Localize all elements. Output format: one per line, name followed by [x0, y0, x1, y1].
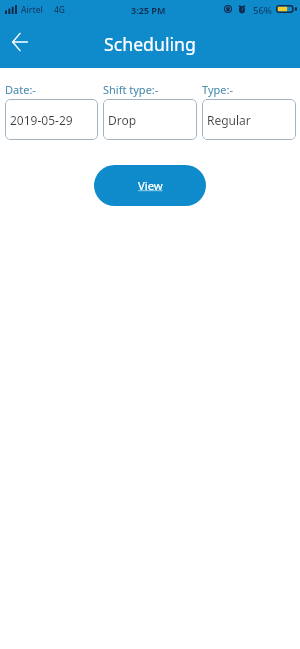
- button[interactable]: Back: [0, 20, 41, 62]
- staticText: Airtel: [21, 4, 43, 16]
- staticText: Date:-: [5, 82, 36, 97]
- button[interactable]: View: [94, 165, 206, 206]
- button[interactable]: Drop: [103, 99, 197, 140]
- button[interactable]: Regular: [202, 99, 296, 140]
- staticText: 4G: [54, 4, 66, 16]
- staticText: 2019-05-29: [10, 112, 73, 128]
- staticText: 3:25 PM: [131, 4, 166, 16]
- staticText: Drop: [108, 112, 137, 128]
- staticText: Regular: [207, 112, 251, 128]
- staticText: Type:-: [202, 82, 233, 97]
- staticText: 56%: [253, 4, 272, 17]
- staticText: Scheduling: [104, 32, 196, 56]
- staticText: Shift type:-: [103, 82, 159, 97]
- staticText: View: [138, 178, 163, 193]
- button[interactable]: 2019-05-29: [5, 99, 98, 140]
